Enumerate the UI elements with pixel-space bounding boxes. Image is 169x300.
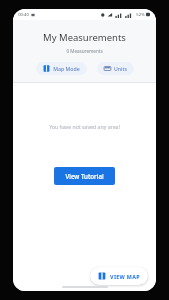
staticText: Map Mode — [53, 65, 80, 72]
other: Map Mode — [43, 65, 50, 72]
other: View Map — [98, 272, 106, 280]
button[interactable]: Units — [97, 62, 134, 75]
staticText: 52% — [136, 12, 145, 18]
staticText: You have not saved any area! — [49, 123, 120, 130]
staticText: 0 Measurements — [66, 48, 103, 54]
other: Units — [104, 65, 111, 72]
staticText: 00:40 — [18, 12, 29, 18]
staticText: My Measurements — [43, 31, 126, 44]
staticText: VIEW MAP — [110, 273, 140, 280]
staticText: View Tutorial — [65, 172, 104, 180]
button[interactable]: View Tutorial — [54, 167, 115, 185]
button[interactable]: Map Mode — [36, 62, 87, 75]
staticText: Units — [114, 65, 127, 72]
button[interactable]: View Map — [90, 267, 148, 285]
